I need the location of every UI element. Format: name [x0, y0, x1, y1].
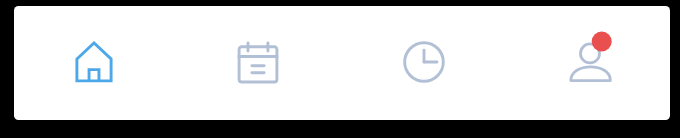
- button[interactable]: Recents: [369, 6, 479, 120]
- button[interactable]: Calendar: [203, 6, 313, 120]
- button[interactable]: Profile: [535, 6, 645, 120]
- button[interactable]: Home: [39, 6, 149, 120]
